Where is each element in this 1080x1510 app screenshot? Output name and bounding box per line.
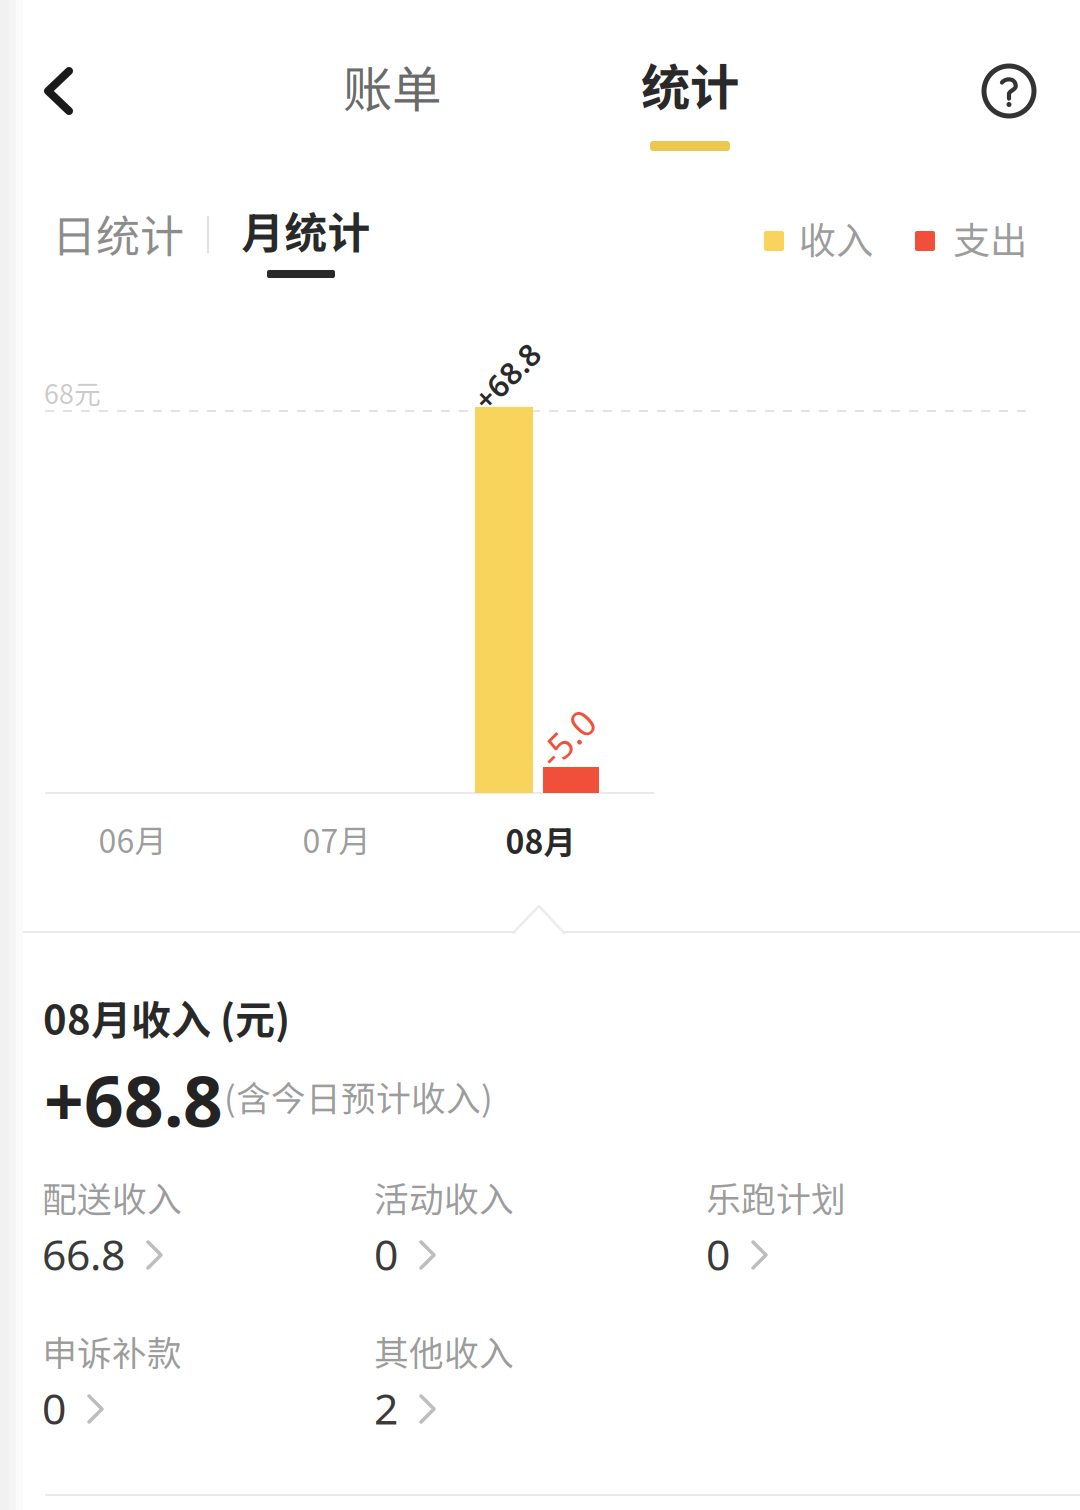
staticText: 配送收入 [42, 1172, 182, 1222]
button[interactable]: 其他收入 [374, 1317, 674, 1431]
staticText: 68元 [44, 373, 101, 412]
staticText: 日统计 [52, 201, 184, 265]
staticText: 月统计 [241, 199, 370, 261]
staticText: 收入 [799, 211, 873, 265]
button[interactable]: 日统计 [38, 192, 198, 274]
button[interactable]: 活动收入 [374, 1163, 674, 1277]
staticText: 统计 [641, 48, 739, 120]
staticText: 支出 [953, 211, 1027, 265]
staticText: 0 [706, 1226, 730, 1282]
button[interactable]: 申诉补款 [42, 1317, 342, 1431]
button[interactable]: 配送收入 [42, 1163, 342, 1277]
staticText: 申诉补款 [42, 1326, 182, 1376]
staticText: 08月收入 (元) [43, 988, 290, 1046]
staticText: 乐跑计划 [706, 1172, 846, 1222]
staticText: 0 [374, 1226, 398, 1282]
staticText: 活动收入 [374, 1172, 514, 1222]
staticText: 06月 [98, 816, 166, 862]
staticText: 08月 [505, 817, 575, 863]
staticText: 2 [374, 1380, 398, 1436]
button[interactable]: 乐跑计划 [706, 1163, 1006, 1277]
staticText: 0 [42, 1380, 66, 1436]
button[interactable]: 07月 [269, 803, 404, 875]
button[interactable]: 06月 [65, 803, 200, 875]
staticText: -5.0 [535, 714, 599, 762]
button[interactable]: 08月 [473, 804, 608, 876]
staticText: +68.8 [44, 1054, 223, 1146]
staticText: 07月 [302, 816, 370, 862]
staticText: (含今日预计收入) [224, 1071, 493, 1121]
staticText: 其他收入 [374, 1326, 514, 1376]
staticText: +68.8 [467, 356, 547, 397]
staticText: 66.8 [42, 1226, 125, 1282]
staticText: 账单 [343, 50, 441, 122]
button[interactable]: Back [21, 46, 96, 136]
button[interactable]: 月统计 [223, 193, 389, 278]
button[interactable]: 统计 [625, 45, 755, 151]
button[interactable]: Help [962, 44, 1056, 138]
button[interactable]: 账单 [328, 44, 456, 128]
